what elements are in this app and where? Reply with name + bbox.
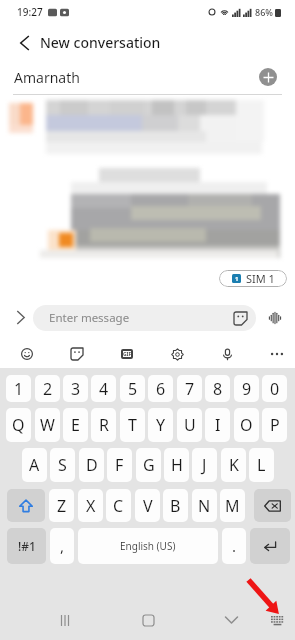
button[interactable]: A xyxy=(22,448,47,482)
staticText: 1 xyxy=(235,275,239,283)
staticText: W xyxy=(40,414,55,436)
staticText: L xyxy=(257,454,266,476)
button[interactable]: Z xyxy=(49,489,74,522)
staticText: V xyxy=(143,495,153,517)
staticText: U xyxy=(184,414,196,436)
button[interactable]: O xyxy=(234,408,259,442)
staticText: 2 xyxy=(43,378,53,400)
button[interactable] xyxy=(7,489,45,522)
button[interactable]: Y xyxy=(148,408,173,442)
staticText: New conversation xyxy=(40,33,161,52)
staticText: 6 xyxy=(156,378,166,400)
button[interactable]: Home xyxy=(134,606,162,634)
staticText: Y xyxy=(156,414,166,436)
staticText: O xyxy=(240,414,253,436)
button[interactable]: 3 xyxy=(63,375,88,402)
button[interactable]: Enter message xyxy=(33,305,256,331)
button[interactable]: L xyxy=(249,448,274,482)
button[interactable]: Back xyxy=(10,29,38,57)
staticText: !#1 xyxy=(18,538,36,554)
button[interactable]: D xyxy=(79,448,104,482)
staticText: B xyxy=(170,495,181,517)
button[interactable]: 5 xyxy=(120,375,145,402)
staticText: G xyxy=(143,454,155,476)
button[interactable]: Q xyxy=(6,408,31,442)
staticText: J xyxy=(202,454,207,476)
button[interactable]: F xyxy=(107,448,132,482)
staticText: 3 xyxy=(71,378,81,400)
button[interactable]: 1 xyxy=(219,270,287,287)
staticText: 5 xyxy=(128,378,138,400)
staticText: A xyxy=(29,454,40,476)
button[interactable]: Emoji xyxy=(13,340,41,368)
staticText: 7 xyxy=(185,378,195,400)
button[interactable]: More xyxy=(263,340,291,368)
button[interactable]: W xyxy=(35,408,60,442)
staticText: English (US) xyxy=(120,539,176,553)
button[interactable]: V xyxy=(135,489,160,522)
staticText: Amarnath xyxy=(14,68,80,87)
button[interactable]: R xyxy=(91,408,116,442)
button[interactable]: Stickers xyxy=(63,340,91,368)
button[interactable]: T xyxy=(120,408,145,442)
button[interactable]: 7 xyxy=(177,375,202,402)
button[interactable]: GIF xyxy=(113,340,141,368)
button[interactable]: U xyxy=(177,408,202,442)
staticText: X xyxy=(86,495,96,517)
button[interactable]: C xyxy=(106,489,131,522)
button[interactable]: Back xyxy=(217,606,245,634)
staticText: D xyxy=(86,454,98,476)
button[interactable]: G xyxy=(136,448,161,482)
button[interactable]: 2 xyxy=(35,375,60,402)
button[interactable]: S xyxy=(50,448,75,482)
button[interactable]: B xyxy=(163,489,188,522)
staticText: 86% xyxy=(255,6,273,18)
staticText: Z xyxy=(57,495,67,517)
button[interactable] xyxy=(250,528,290,564)
staticText: P xyxy=(270,414,280,436)
button[interactable]: 4 xyxy=(91,375,116,402)
button[interactable]: J xyxy=(192,448,217,482)
button[interactable]: K xyxy=(221,448,246,482)
button[interactable]: M xyxy=(220,489,245,522)
staticText: N xyxy=(198,495,211,517)
button[interactable]: . xyxy=(222,528,246,564)
button[interactable]: I xyxy=(205,408,230,442)
button[interactable]: Voice input xyxy=(213,340,241,368)
button[interactable]: 1 xyxy=(6,375,31,402)
staticText: . xyxy=(232,536,237,556)
button[interactable]: Stickers xyxy=(234,312,247,325)
staticText: I xyxy=(215,414,221,436)
staticText: Enter message xyxy=(49,310,130,326)
staticText: T xyxy=(128,414,137,436)
staticText: , xyxy=(60,536,65,556)
staticText: C xyxy=(113,495,124,517)
button[interactable]: N xyxy=(192,489,217,522)
button[interactable]: E xyxy=(63,408,88,442)
button[interactable]: H xyxy=(164,448,189,482)
button[interactable]: English (US) xyxy=(78,528,218,564)
button[interactable]: Hide keyboard xyxy=(263,606,291,634)
button[interactable]: Voice message xyxy=(262,305,288,331)
staticText: S xyxy=(58,454,67,476)
staticText: 8 xyxy=(213,378,223,400)
staticText: F xyxy=(115,454,124,476)
button[interactable]: 6 xyxy=(148,375,173,402)
button[interactable]: , xyxy=(50,528,74,564)
button[interactable]: 9 xyxy=(234,375,259,402)
button[interactable]: Show apps xyxy=(7,304,34,331)
button[interactable]: 8 xyxy=(205,375,230,402)
button[interactable] xyxy=(254,489,291,522)
button[interactable]: Add recipient xyxy=(259,68,277,86)
button[interactable]: Recents xyxy=(51,606,79,634)
staticText: R xyxy=(99,414,109,436)
button[interactable]: X xyxy=(78,489,103,522)
button[interactable]: P xyxy=(262,408,287,442)
staticText: H xyxy=(171,454,183,476)
button[interactable]: Settings xyxy=(163,340,191,368)
staticText: 9 xyxy=(242,378,252,400)
button[interactable]: !#1 xyxy=(7,528,46,564)
staticText: 1 xyxy=(14,378,24,400)
staticText: 19:27 xyxy=(17,5,43,19)
button[interactable]: 0 xyxy=(262,375,287,402)
